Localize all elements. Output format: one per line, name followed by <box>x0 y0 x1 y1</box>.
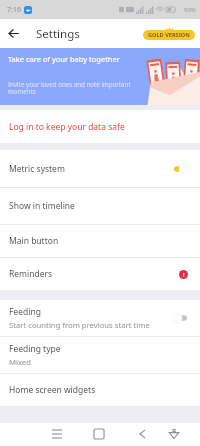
staticText: Home screen widgets <box>9 384 96 396</box>
staticText: Invite your loved ones and note importan… <box>8 80 140 96</box>
button[interactable]: Home <box>90 425 108 443</box>
button[interactable]: Back <box>3 23 24 44</box>
staticText: Settings <box>36 26 80 42</box>
staticText: Mixed <box>9 357 31 367</box>
button[interactable] <box>172 163 188 175</box>
staticText: 7:16 <box>7 5 21 15</box>
staticText: ! <box>183 271 185 279</box>
button[interactable]: Take care of your baby together <box>0 48 200 105</box>
staticText: 99% <box>184 6 196 14</box>
button[interactable]: Home screen widgets <box>0 374 200 405</box>
button[interactable] <box>172 312 188 324</box>
button[interactable]: Recents <box>48 425 66 443</box>
button[interactable]: Log in to keep your data safe <box>0 110 200 143</box>
button[interactable]: Metric system <box>0 150 200 187</box>
staticText: Feeding type <box>9 343 61 355</box>
staticText: Show in timeline <box>9 200 75 212</box>
staticText: Metric system <box>9 163 65 175</box>
button[interactable]: Feeding <box>0 300 200 336</box>
button[interactable]: Feeding type <box>0 337 200 373</box>
staticText: Main button <box>9 235 59 247</box>
staticText: Log in to keep your data safe <box>9 121 125 133</box>
staticText: Feeding <box>9 306 41 318</box>
button[interactable]: Show in timeline <box>0 188 200 224</box>
button[interactable]: GOLD VERSION <box>143 30 195 40</box>
staticText: Start counting from previous start time <box>9 320 150 330</box>
button[interactable]: Hide keyboard <box>165 425 183 443</box>
button[interactable]: Back <box>132 425 150 443</box>
button[interactable]: Main button <box>0 225 200 257</box>
staticText: GOLD VERSION <box>148 31 190 39</box>
button[interactable]: Reminders <box>0 258 200 290</box>
staticText: Reminders <box>9 268 53 280</box>
staticText: Take care of your baby together <box>8 54 120 64</box>
